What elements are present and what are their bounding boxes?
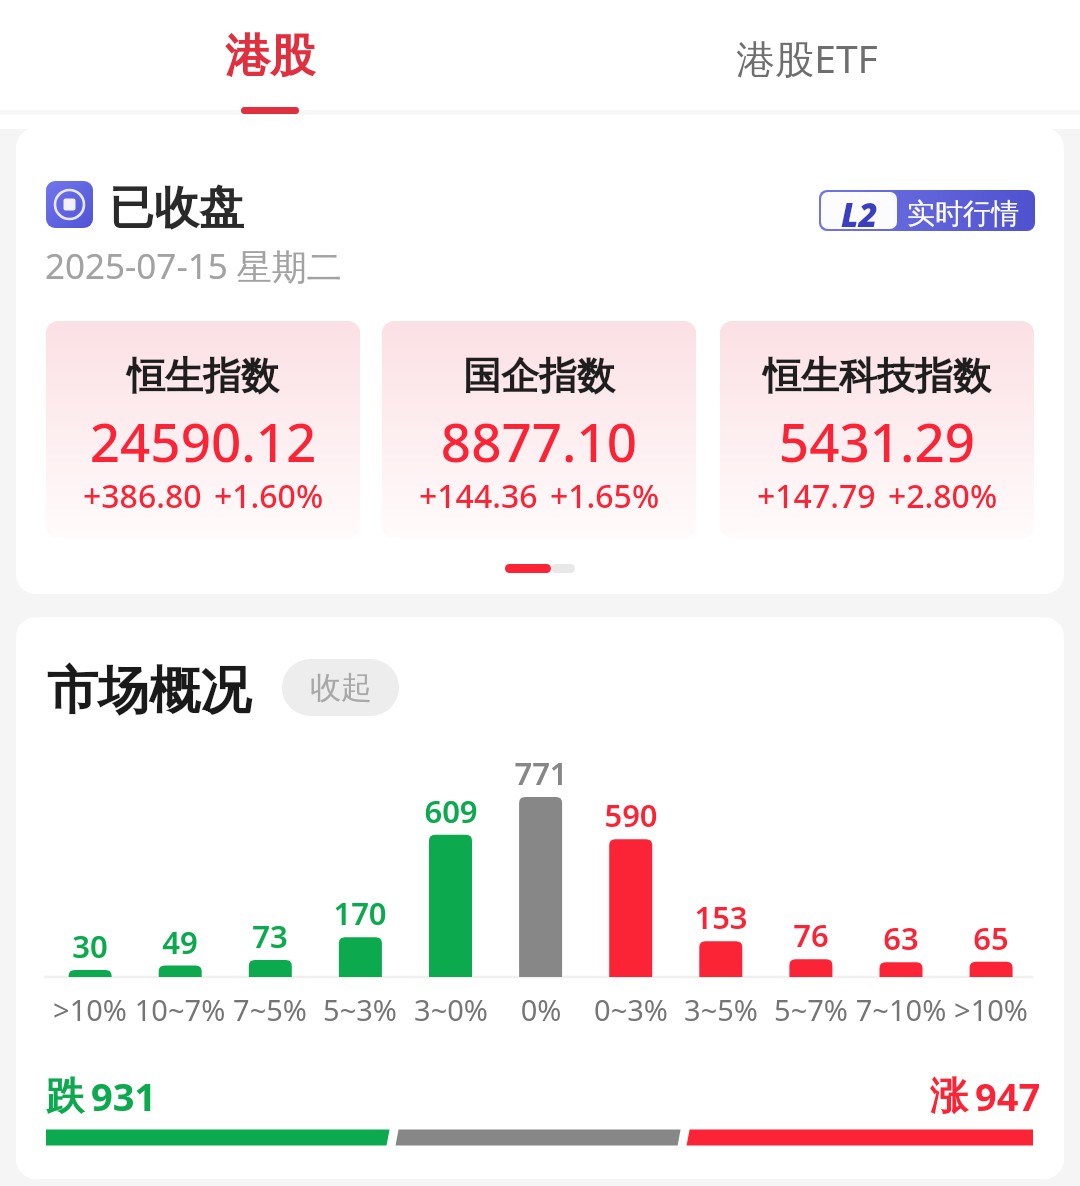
staticText: 10~7% [120, 990, 240, 1029]
button[interactable]: L2 [819, 190, 1035, 231]
staticText: 已收盘 [109, 180, 244, 237]
staticText: 实时行情 [907, 196, 1019, 231]
staticText: 24590.12 [46, 405, 360, 477]
staticText: 65 [931, 917, 1051, 959]
staticText: 771 [481, 752, 601, 794]
staticText: 2025-07-15 星期二 [45, 242, 342, 290]
staticText: 跌 [46, 1072, 84, 1120]
staticText: 30 [30, 925, 150, 967]
staticText: 7~5% [210, 990, 330, 1029]
staticText: 5~7% [751, 990, 871, 1029]
staticText: 3~5% [661, 990, 781, 1029]
staticText: +1.65% [550, 474, 660, 518]
staticText: 3~0% [391, 990, 511, 1029]
staticText: 涨 [930, 1072, 968, 1120]
staticText: 76 [751, 914, 871, 956]
staticText: 5~3% [300, 990, 420, 1029]
staticText: 49 [120, 921, 240, 963]
staticText: +2.80% [888, 474, 998, 518]
button[interactable]: 港股 [194, 0, 346, 118]
staticText: 7~10% [841, 990, 961, 1029]
other: 市场已收盘 [46, 181, 93, 228]
staticText: 5431.29 [720, 405, 1034, 477]
staticText: +1.60% [214, 474, 324, 518]
staticText: +386.80 [83, 474, 202, 518]
staticText: 国企指数 [382, 352, 696, 400]
staticText: +147.79 [757, 474, 876, 518]
staticText: 153 [661, 896, 781, 938]
staticText: 947 [975, 1070, 1041, 1122]
staticText: >10% [30, 990, 150, 1029]
staticText: 8877.10 [382, 405, 696, 477]
staticText: 市场概况 [47, 659, 251, 723]
staticText: 恒生指数 [46, 352, 360, 400]
staticText: +144.36 [419, 474, 538, 518]
staticText: 73 [210, 915, 330, 957]
button[interactable]: 国企指数 [382, 321, 696, 538]
button[interactable]: 恒生科技指数 [720, 321, 1034, 538]
staticText: 0% [481, 990, 601, 1029]
staticText: 609 [391, 790, 511, 832]
staticText: 港股 [194, 28, 346, 85]
staticText: L2 [841, 192, 878, 229]
staticText: >10% [931, 990, 1051, 1029]
staticText: 170 [300, 892, 420, 934]
button[interactable]: 港股ETF [731, 0, 883, 118]
staticText: 63 [841, 917, 961, 959]
staticText: 恒生科技指数 [720, 352, 1034, 400]
staticText: 590 [571, 794, 691, 836]
staticText: 931 [91, 1070, 157, 1122]
button[interactable]: 恒生指数 [46, 321, 360, 538]
staticText: 港股ETF [731, 31, 883, 84]
staticText: 0~3% [571, 990, 691, 1029]
staticText: 收起 [310, 668, 372, 707]
button[interactable]: 收起 [282, 659, 399, 716]
